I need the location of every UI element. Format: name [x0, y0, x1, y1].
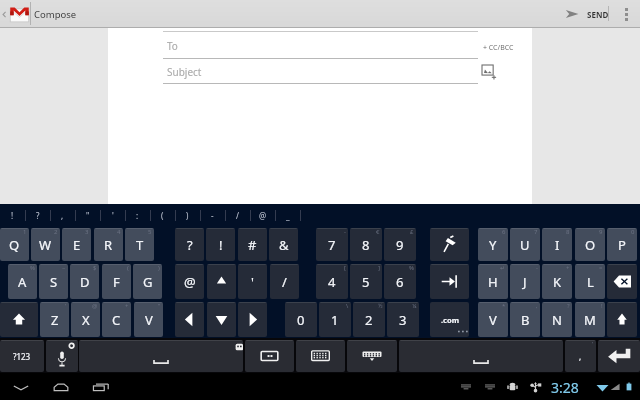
button[interactable]: R	[94, 228, 123, 261]
button[interactable]: Z	[40, 302, 69, 337]
button[interactable]: B	[510, 302, 540, 337]
staticText: %	[409, 264, 414, 272]
button[interactable]: Caps	[207, 264, 236, 299]
button[interactable]: ?	[175, 228, 204, 261]
button[interactable]: 9	[384, 228, 416, 261]
button[interactable]: L	[575, 264, 605, 299]
button[interactable]: Subject	[163, 60, 478, 83]
button[interactable]: /	[270, 264, 299, 299]
button[interactable]: Space	[79, 340, 243, 372]
button[interactable]: Space 2	[399, 340, 563, 372]
button[interactable]: 1	[319, 302, 351, 337]
staticText: To	[167, 39, 178, 53]
button[interactable]: ?	[25, 204, 50, 227]
button[interactable]: 0	[285, 302, 317, 337]
button[interactable]: Text input mode	[245, 340, 294, 372]
button[interactable]: W	[31, 228, 60, 261]
button[interactable]: :	[125, 204, 150, 227]
staticText: )	[186, 210, 189, 221]
button[interactable]: '	[100, 204, 125, 227]
button[interactable]: More options	[612, 0, 640, 28]
button[interactable]: K	[542, 264, 572, 299]
button[interactable]: Tab	[430, 264, 469, 299]
button[interactable]: J	[510, 264, 540, 299]
button[interactable]: 2	[353, 302, 385, 337]
button[interactable]: P	[607, 228, 637, 261]
button[interactable]: 4	[316, 264, 348, 299]
button[interactable]: X	[71, 302, 100, 337]
staticText: ↵	[500, 264, 506, 271]
button[interactable]: .com	[430, 302, 469, 337]
staticText: ~	[62, 264, 66, 272]
button[interactable]: !	[0, 204, 25, 227]
button[interactable]: I	[542, 228, 572, 261]
button[interactable]: Shift right	[607, 302, 637, 337]
button[interactable]: "	[75, 204, 100, 227]
button[interactable]: ?123	[0, 340, 44, 372]
button[interactable]: 3	[387, 302, 419, 337]
staticText: 4	[117, 228, 121, 236]
button[interactable]: N	[542, 302, 572, 337]
button[interactable]: T	[125, 228, 154, 261]
button[interactable]: -	[200, 204, 225, 227]
button[interactable]: Q	[0, 228, 29, 261]
staticText: 3	[85, 228, 89, 236]
button[interactable]: Navigate up	[0, 0, 9, 28]
button[interactable]: SEND	[560, 0, 614, 28]
button[interactable]: O	[575, 228, 605, 261]
button[interactable]: !	[206, 228, 235, 261]
button[interactable]: Y	[478, 228, 508, 261]
button[interactable]: &	[269, 228, 298, 261]
staticText: P	[618, 236, 626, 254]
staticText: O	[585, 236, 596, 254]
button[interactable]: Hide keyboard	[347, 340, 397, 372]
button[interactable]: Right	[238, 302, 267, 337]
button[interactable]: V	[134, 302, 163, 337]
button[interactable]: A	[8, 264, 37, 299]
button[interactable]: ,	[50, 204, 75, 227]
button[interactable]: /	[225, 204, 250, 227]
staticText: Q	[9, 236, 20, 254]
staticText: 8	[566, 228, 570, 236]
button[interactable]: Back	[1, 373, 41, 400]
button[interactable]: Down	[207, 302, 236, 337]
button[interactable]: Backspace	[607, 264, 637, 299]
button[interactable]: D	[70, 264, 99, 299]
button[interactable]: V	[478, 302, 508, 337]
button[interactable]: Attach image	[481, 64, 499, 82]
staticText: )	[158, 264, 160, 272]
button[interactable]: 6	[384, 264, 416, 299]
button[interactable]: Shift	[0, 302, 38, 337]
staticText: U	[520, 236, 530, 254]
button[interactable]: 5	[350, 264, 382, 299]
button[interactable]: Home	[41, 373, 81, 400]
button[interactable]: S	[39, 264, 68, 299]
button[interactable]: #	[238, 228, 267, 261]
button[interactable]: Left	[175, 302, 204, 337]
button[interactable]: U	[510, 228, 540, 261]
button[interactable]: Recent apps	[81, 373, 121, 400]
button[interactable]: Pin	[430, 228, 469, 261]
staticText: $	[93, 264, 97, 272]
button[interactable]: Voice input	[46, 340, 78, 372]
button[interactable]: (	[150, 204, 175, 227]
button[interactable]: @	[250, 204, 275, 227]
button[interactable]: '	[238, 264, 267, 299]
button[interactable]: G	[133, 264, 162, 299]
button[interactable]: C	[102, 302, 131, 337]
button[interactable]: )	[175, 204, 200, 227]
button[interactable]: H	[478, 264, 508, 299]
button[interactable]: @	[175, 264, 204, 299]
button[interactable]: + CC/BCC	[481, 41, 516, 55]
button[interactable]: Enter	[598, 340, 640, 372]
button[interactable]: 8	[350, 228, 382, 261]
button[interactable]: F	[102, 264, 131, 299]
button[interactable]: ,	[565, 340, 596, 372]
button[interactable]: M	[575, 302, 605, 337]
button[interactable]: 7	[316, 228, 348, 261]
button[interactable]: Keyboard layout	[296, 340, 345, 372]
button[interactable]: _	[275, 204, 300, 227]
staticText: ?	[187, 236, 193, 254]
button[interactable]: To	[163, 34, 478, 58]
button[interactable]: E	[62, 228, 91, 261]
